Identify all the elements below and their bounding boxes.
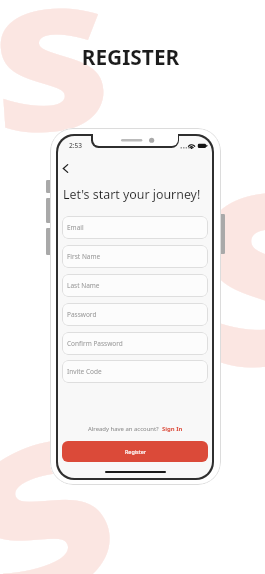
button[interactable]: Register — [62, 441, 208, 462]
staticText: Email — [67, 223, 84, 232]
staticText: S — [0, 0, 116, 182]
button[interactable]: Confirm Password — [62, 332, 208, 355]
button[interactable]: Invite Code — [62, 360, 208, 383]
staticText: Password — [67, 310, 97, 319]
staticText: Last Name — [67, 281, 100, 290]
staticText: Confirm Password — [67, 339, 123, 348]
staticText: Let's start your journey! — [63, 186, 201, 203]
button[interactable]: Back — [59, 162, 72, 175]
staticText: First Name — [67, 252, 101, 261]
staticText: Already have an account? — [88, 425, 159, 433]
button[interactable]: Last Name — [62, 274, 208, 297]
button[interactable]: First Name — [62, 245, 208, 268]
staticText: REGISTER — [0, 43, 263, 71]
button[interactable]: Sign In — [159, 425, 183, 433]
button[interactable]: Password — [62, 303, 208, 326]
staticText: Invite Code — [67, 367, 102, 376]
staticText: Register — [125, 448, 146, 455]
staticText: 2:53 — [69, 141, 83, 150]
staticText: S — [182, 107, 265, 439]
staticText: S — [0, 364, 157, 574]
staticText: Sign In — [162, 425, 183, 433]
button[interactable]: Email — [62, 216, 208, 239]
